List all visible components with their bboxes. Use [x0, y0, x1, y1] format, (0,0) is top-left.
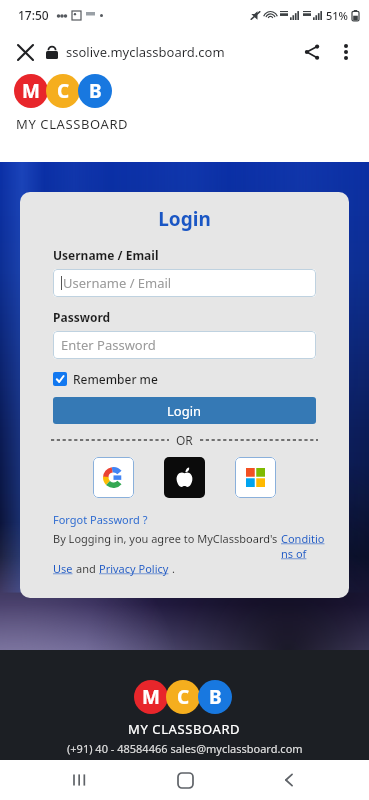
staticText: By Logging in, you agree to MyClassboard… — [53, 531, 281, 546]
staticText: OR — [176, 432, 193, 448]
button[interactable]: Username / Email — [53, 269, 316, 297]
staticText: B — [209, 684, 222, 710]
staticText: . — [172, 561, 175, 576]
staticText: 51% — [326, 8, 348, 23]
staticText: 17:50 — [18, 7, 49, 23]
button[interactable]: Forgot Password ? — [53, 512, 148, 527]
button[interactable]: Back — [265, 760, 313, 800]
staticText: (+91) 40 - 48584466 sales@myclassboard.c… — [67, 741, 303, 756]
staticText: MY CLASSBOARD — [16, 115, 129, 133]
button[interactable]: Use — [53, 561, 76, 576]
button[interactable]: Conditions of — [281, 531, 329, 561]
button[interactable]: Home — [161, 760, 209, 800]
button[interactable]: Remember me — [53, 371, 158, 387]
staticText: Login — [34, 206, 335, 232]
staticText: ssolive.myclassboard.com — [66, 43, 225, 61]
staticText: Enter Password — [61, 336, 156, 354]
button[interactable]: Login — [53, 397, 316, 424]
button[interactable]: Sign in with Apple — [164, 457, 205, 498]
button[interactable]: Enter Password — [53, 331, 316, 359]
button[interactable]: Share — [295, 35, 329, 69]
button[interactable]: Close — [8, 35, 42, 69]
staticText: Login — [167, 402, 202, 420]
button[interactable]: More options — [329, 35, 363, 69]
button[interactable]: Privacy Policy — [99, 561, 172, 576]
staticText: and — [76, 561, 99, 576]
staticText: M — [142, 684, 160, 710]
button[interactable]: Recents — [56, 760, 104, 800]
staticText: Username / Email — [53, 247, 159, 263]
staticText: Username / Email — [63, 274, 172, 292]
staticText: Remember me — [73, 371, 158, 387]
staticText: MY CLASSBOARD — [128, 720, 241, 738]
staticText: M — [22, 78, 40, 104]
staticText: C — [177, 684, 190, 710]
staticText: B — [89, 78, 102, 104]
staticText: C — [57, 78, 70, 104]
staticText: Password — [53, 309, 111, 325]
button[interactable]: Sign in with Google — [93, 457, 134, 498]
button[interactable]: Sign in with Microsoft — [235, 457, 276, 498]
